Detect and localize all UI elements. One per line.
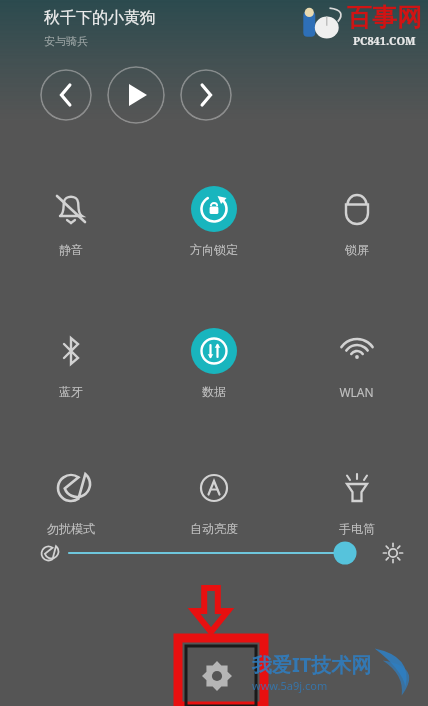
button[interactable]: Bluetooth bbox=[0, 324, 142, 403]
button[interactable]: Flashlight bbox=[285, 461, 428, 540]
button[interactable] bbox=[0, 536, 428, 570]
staticText: 百事网 bbox=[347, 2, 422, 33]
button[interactable]: Do not disturb bbox=[0, 461, 142, 540]
button[interactable]: Rotation lock bbox=[142, 182, 285, 261]
staticText: 静音 bbox=[59, 242, 83, 257]
staticText: 勿扰模式 bbox=[47, 521, 95, 536]
staticText: 数据 bbox=[202, 384, 226, 399]
staticText: 自动亮度 bbox=[190, 521, 238, 536]
staticText: 手电筒 bbox=[339, 521, 375, 536]
button[interactable]: Next bbox=[180, 69, 232, 121]
button[interactable]: Mute bbox=[0, 182, 142, 261]
button[interactable]: Mobile data bbox=[142, 324, 285, 403]
button[interactable]: Lock screen bbox=[285, 182, 428, 261]
staticText: 方向锁定 bbox=[190, 242, 238, 257]
button[interactable]: WLAN bbox=[285, 324, 428, 404]
staticText: 锁屏 bbox=[345, 242, 369, 257]
button[interactable]: Previous bbox=[40, 69, 92, 121]
staticText: 蓝牙 bbox=[59, 384, 83, 399]
staticText: www.5a9j.com bbox=[252, 678, 328, 693]
staticText: WLAN bbox=[339, 384, 374, 400]
button[interactable]: Play bbox=[107, 66, 165, 124]
button[interactable]: Settings bbox=[178, 638, 264, 706]
button[interactable]: Auto brightness bbox=[142, 461, 285, 540]
staticText: 我爱IT技术网 bbox=[252, 651, 372, 678]
staticText: PC841.COM bbox=[353, 33, 416, 48]
staticText: 秋千下的小黄狗 bbox=[44, 8, 156, 28]
staticText: 安与骑兵 bbox=[44, 34, 88, 48]
